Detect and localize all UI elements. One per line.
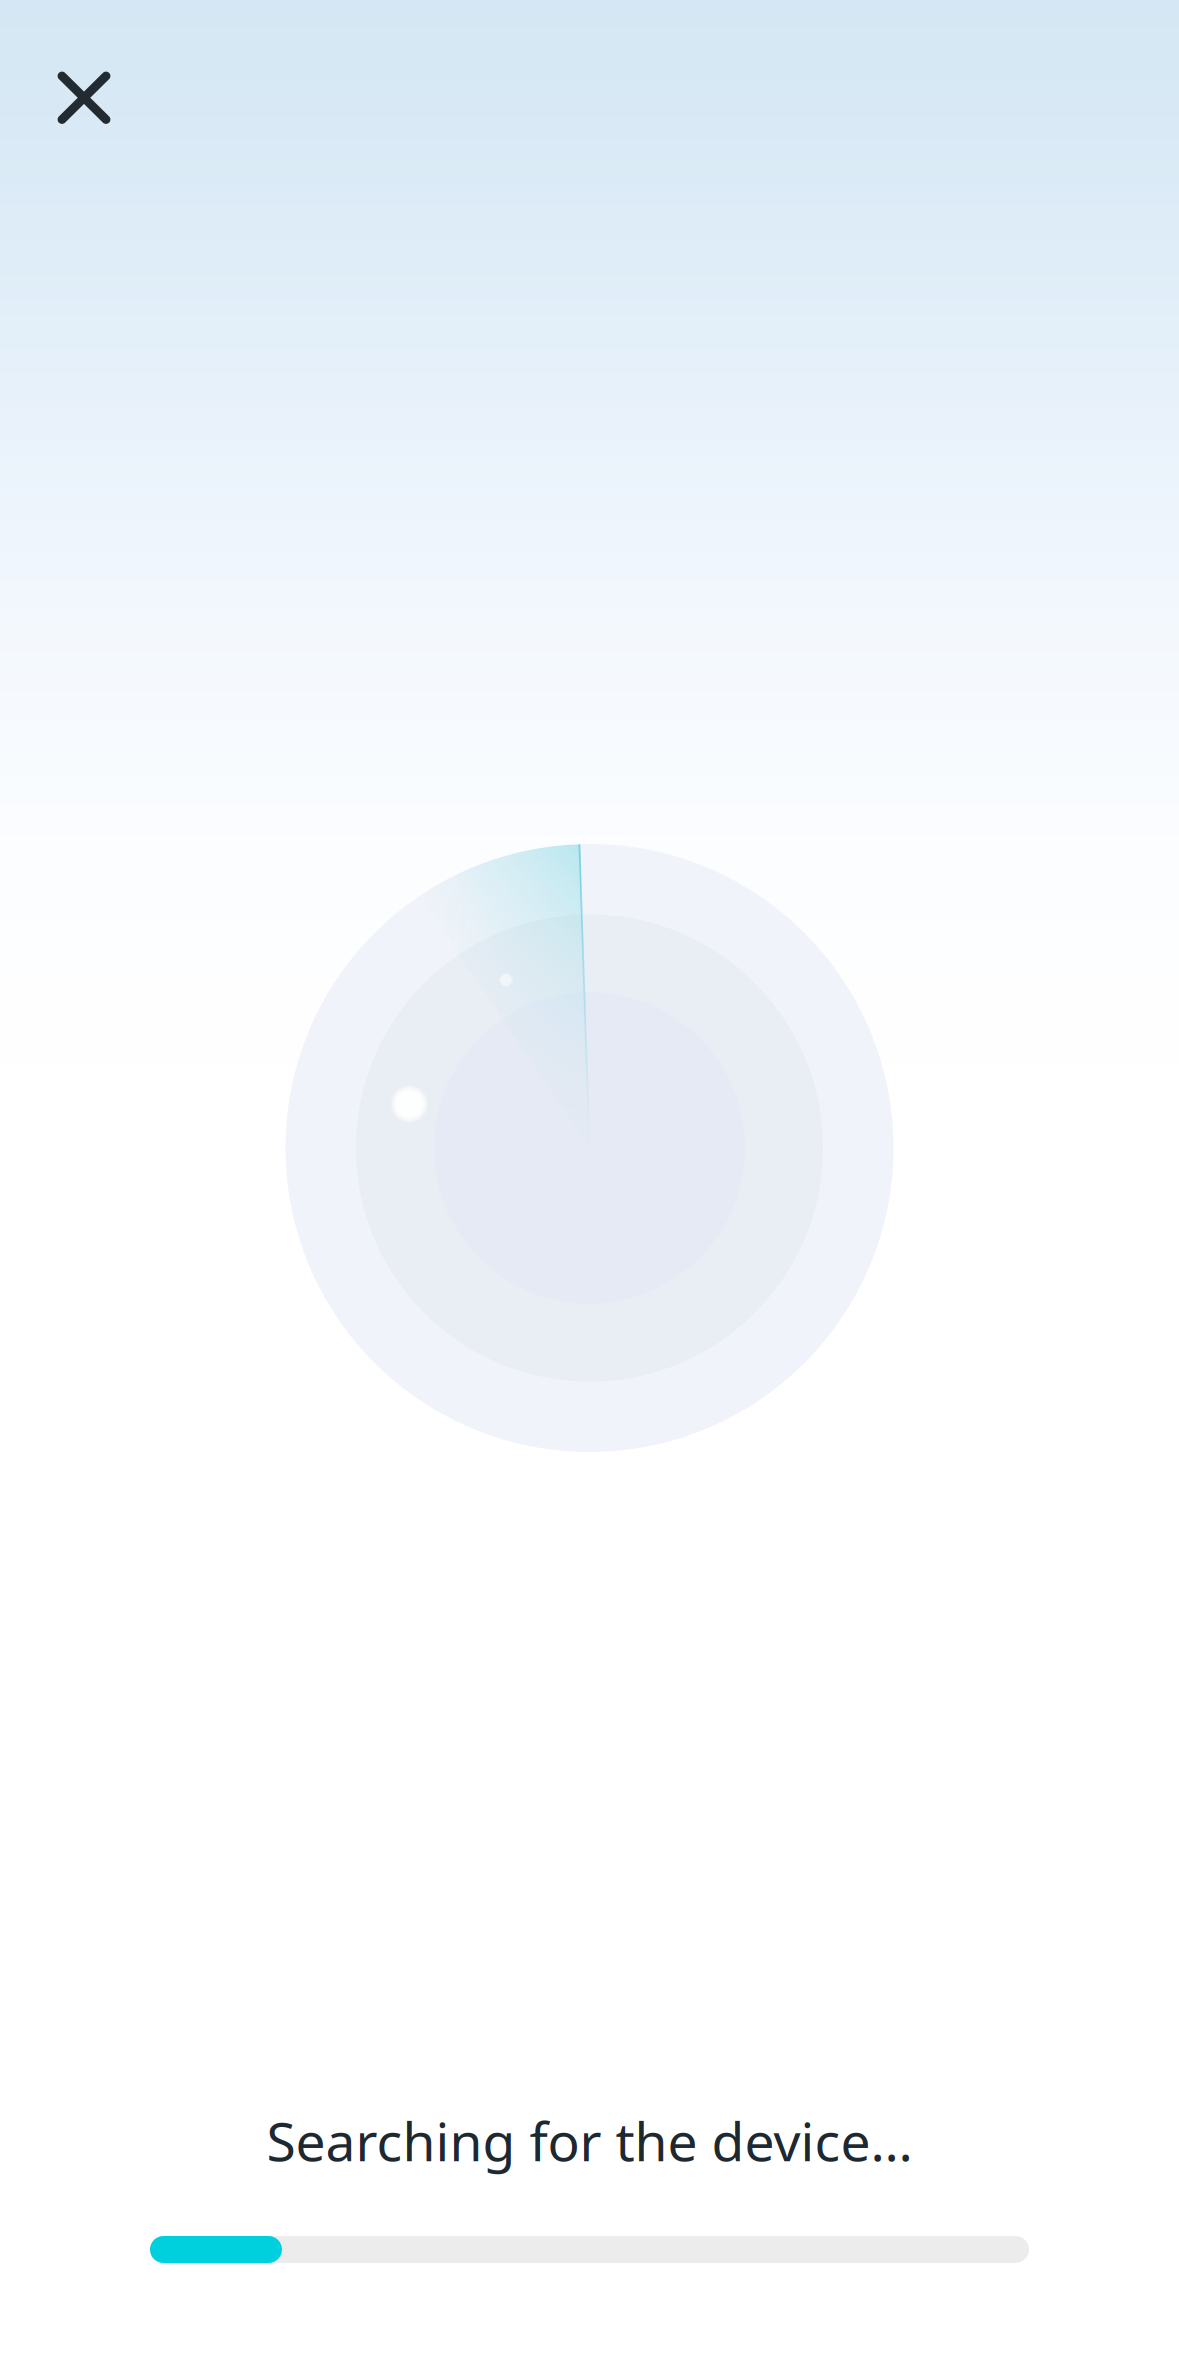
button[interactable]: Close <box>0 0 180 200</box>
staticText: Searching for the device... <box>266 2105 912 2176</box>
